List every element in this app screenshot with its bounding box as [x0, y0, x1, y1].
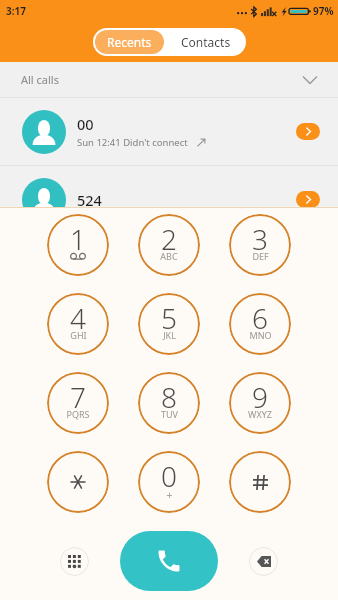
- staticText: 3:17: [6, 4, 26, 18]
- button[interactable]: Hide dialpad: [60, 547, 89, 576]
- button[interactable]: 1: [47, 214, 109, 276]
- button[interactable]: Call: [120, 531, 218, 591]
- staticText: Contacts: [181, 34, 231, 50]
- button[interactable]: Delete: [249, 547, 278, 576]
- button[interactable]: [47, 451, 109, 513]
- staticText: DEF: [252, 250, 269, 262]
- staticText: 6: [252, 299, 268, 337]
- button[interactable]: 9: [229, 372, 291, 434]
- button[interactable]: 5: [138, 293, 200, 355]
- button[interactable]: 4: [47, 293, 109, 355]
- staticText: ABC: [160, 250, 178, 262]
- button[interactable]: All calls: [0, 62, 338, 97]
- staticText: All calls: [21, 72, 59, 87]
- staticText: 3: [252, 220, 268, 258]
- button[interactable]: 8: [138, 372, 200, 434]
- button[interactable]: 7: [47, 372, 109, 434]
- staticText: 0: [161, 457, 177, 495]
- staticText: 2: [161, 220, 177, 258]
- button[interactable]: 524: [0, 166, 338, 233]
- staticText: 8: [161, 378, 177, 416]
- staticText: 524: [77, 190, 102, 210]
- staticText: +: [166, 487, 173, 502]
- staticText: 9: [252, 378, 268, 416]
- staticText: TUV: [161, 408, 178, 420]
- staticText: WXYZ: [248, 408, 272, 420]
- button[interactable]: 6: [229, 293, 291, 355]
- staticText: 4: [70, 299, 86, 337]
- staticText: MNO: [249, 329, 272, 341]
- staticText: 5: [161, 299, 177, 337]
- staticText: 00: [77, 114, 94, 134]
- button[interactable]: 2: [138, 214, 200, 276]
- staticText: PQRS: [66, 408, 90, 420]
- button[interactable]: Recents: [95, 30, 164, 54]
- staticText: 1: [70, 220, 86, 258]
- button[interactable]: 0: [138, 451, 200, 513]
- staticText: 97%: [313, 4, 334, 18]
- button[interactable]: 00: [0, 98, 338, 165]
- button[interactable]: [229, 451, 291, 513]
- staticText: 7: [70, 378, 86, 416]
- button[interactable]: Call details: [296, 191, 320, 208]
- button[interactable]: 3: [229, 214, 291, 276]
- staticText: JKL: [163, 329, 176, 341]
- staticText: Sun 12:41 Didn't connect: [77, 136, 188, 149]
- staticText: Recents: [107, 34, 152, 50]
- button[interactable]: Call details: [296, 123, 320, 140]
- staticText: GHI: [70, 329, 87, 341]
- button[interactable]: Contacts: [166, 28, 246, 56]
